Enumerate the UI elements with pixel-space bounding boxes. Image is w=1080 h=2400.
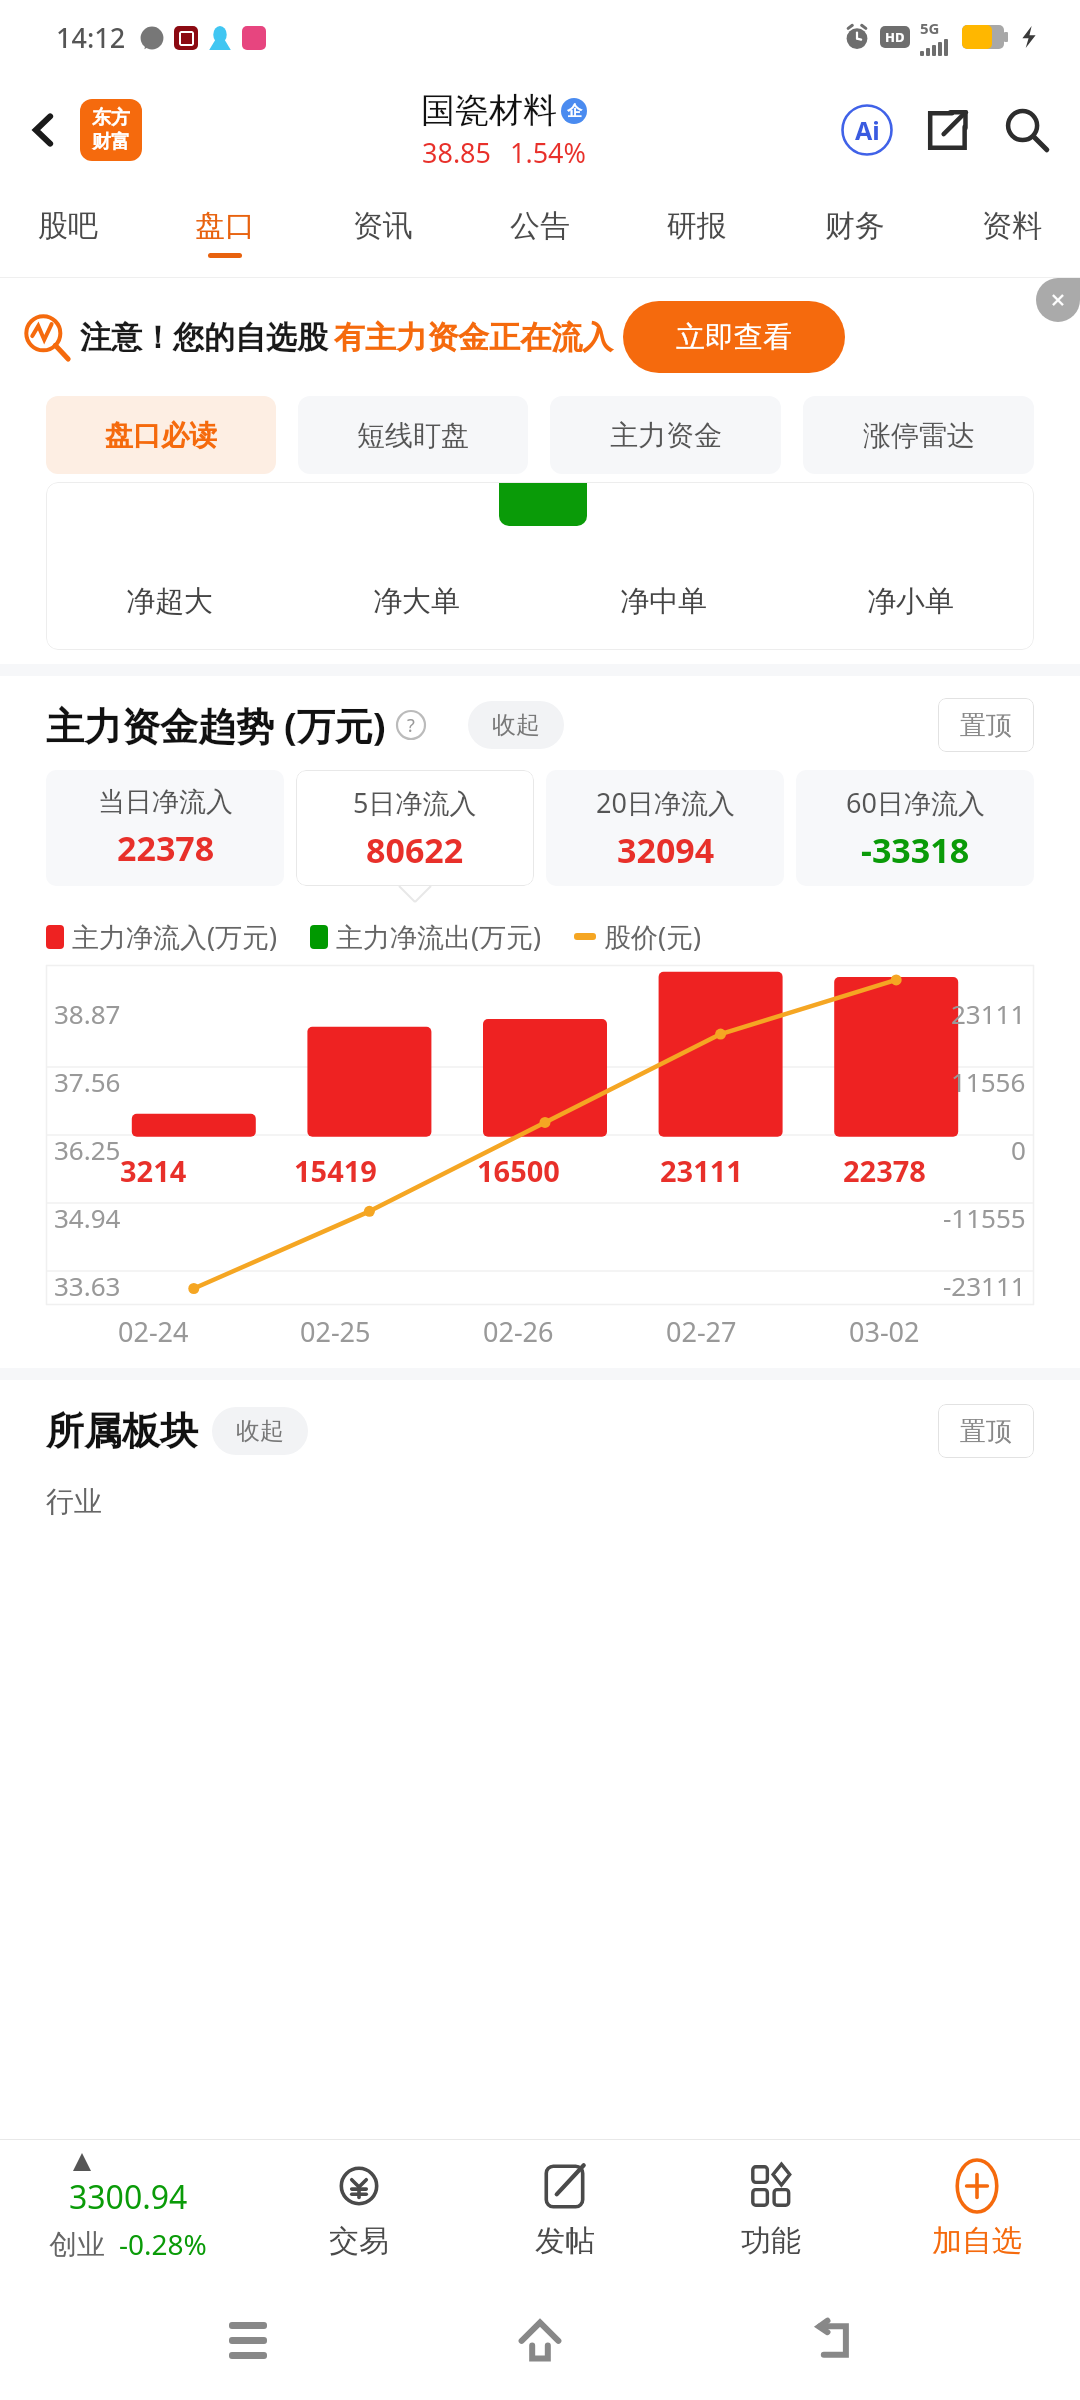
- staticText: 有主力资金正在流入: [334, 318, 613, 357]
- staticText: 33.63: [54, 1268, 121, 1303]
- button[interactable]: 财务: [825, 186, 885, 278]
- button[interactable]: Home: [495, 2295, 585, 2385]
- staticText: 置顶: [960, 1415, 1012, 1448]
- staticText: 34.94: [54, 1200, 121, 1235]
- staticText: 企: [567, 102, 582, 121]
- button[interactable]: 研报: [667, 186, 727, 278]
- staticText: 3300.94: [69, 2175, 188, 2219]
- button[interactable]: 5日净流入: [296, 770, 534, 886]
- button[interactable]: 净中单: [540, 583, 787, 620]
- button[interactable]: Recents: [203, 2295, 293, 2385]
- button[interactable]: 公告: [510, 186, 570, 278]
- button[interactable]: 盘口: [195, 186, 255, 278]
- staticText: 11556: [951, 1064, 1026, 1099]
- button[interactable]: 加自选: [874, 2160, 1080, 2260]
- button[interactable]: Back: [14, 100, 74, 160]
- staticText: 1.54%: [510, 134, 587, 171]
- button[interactable]: 发帖: [462, 2160, 668, 2260]
- button[interactable]: Back: [788, 2295, 878, 2385]
- button[interactable]: 60日净流入: [796, 770, 1034, 886]
- staticText: 研报: [667, 207, 727, 245]
- staticText: 22378: [843, 1151, 926, 1190]
- staticText: 资料: [982, 207, 1042, 245]
- staticText: 发帖: [535, 2222, 595, 2260]
- staticText: 20日净流入: [596, 784, 735, 821]
- staticText: 38.87: [54, 996, 121, 1031]
- button[interactable]: 3300.94: [0, 2157, 256, 2263]
- button[interactable]: AI assistant: [838, 101, 896, 159]
- staticText: 38.85: [422, 134, 492, 171]
- staticText: 02-26: [483, 1313, 554, 1350]
- staticText: 财务: [825, 207, 885, 245]
- button[interactable]: 功能: [668, 2160, 874, 2260]
- button[interactable]: 东方财富: [80, 99, 142, 161]
- button[interactable]: 20日净流入: [546, 770, 784, 886]
- button[interactable]: Share: [918, 101, 976, 159]
- staticText: Ai: [855, 113, 880, 147]
- button[interactable]: 净超大: [46, 583, 293, 620]
- staticText: 37.56: [54, 1064, 121, 1099]
- button[interactable]: 盘口必读: [46, 396, 276, 474]
- staticText: 主力净流入(万元): [72, 918, 278, 955]
- staticText: 交易: [329, 2222, 389, 2260]
- button[interactable]: 涨停雷达: [803, 396, 1034, 474]
- staticText: 15419: [294, 1151, 377, 1190]
- staticText: 14:12: [56, 19, 126, 56]
- button[interactable]: 净小单: [787, 583, 1034, 620]
- button[interactable]: 注意！您的自选股: [24, 278, 1064, 396]
- staticText: 行业: [46, 1484, 102, 1519]
- staticText: ?: [407, 713, 415, 738]
- staticText: 80622: [366, 827, 464, 873]
- staticText: 置顶: [960, 709, 1012, 742]
- staticText: 财富: [92, 130, 130, 154]
- button[interactable]: 资料: [982, 186, 1042, 278]
- staticText: 股吧: [38, 207, 98, 245]
- staticText: 盘口: [195, 207, 255, 245]
- staticText: 所属板块: [46, 1407, 198, 1455]
- staticText: 短线盯盘: [357, 418, 469, 453]
- staticText: 立即查看: [676, 319, 792, 356]
- button[interactable]: 股吧: [38, 186, 98, 278]
- button[interactable]: 置顶: [938, 1404, 1034, 1458]
- staticText: -33318: [861, 827, 970, 873]
- button[interactable]: 收起: [212, 1407, 308, 1455]
- staticText: 收起: [236, 1416, 284, 1446]
- button[interactable]: 当日净流入: [46, 770, 284, 886]
- button[interactable]: Search: [998, 101, 1056, 159]
- button[interactable]: 资讯: [353, 186, 413, 278]
- staticText: 资讯: [353, 207, 413, 245]
- staticText: 02-27: [666, 1313, 737, 1350]
- staticText: -23111: [943, 1268, 1026, 1303]
- staticText: 23111: [951, 996, 1026, 1031]
- staticText: -11555: [943, 1200, 1026, 1235]
- staticText: ✕: [1050, 289, 1066, 311]
- staticText: 净超大: [126, 583, 213, 620]
- staticText: 东方: [92, 106, 130, 130]
- button[interactable]: 净大单: [293, 583, 540, 620]
- button[interactable]: 立即查看: [623, 301, 845, 373]
- button[interactable]: 主力资金: [550, 396, 781, 474]
- staticText: 公告: [510, 207, 570, 245]
- button[interactable]: 置顶: [938, 698, 1034, 752]
- staticText: 当日净流入: [98, 785, 233, 819]
- button[interactable]: 交易: [256, 2160, 462, 2260]
- staticText: 主力资金: [610, 418, 722, 453]
- button[interactable]: 短线盯盘: [298, 396, 528, 474]
- staticText: 功能: [741, 2222, 801, 2260]
- staticText: 注意！您的自选股: [80, 318, 328, 357]
- staticText: 22378: [117, 825, 215, 871]
- staticText: 32094: [617, 827, 715, 873]
- staticText: 主力净流出(万元): [336, 918, 542, 955]
- staticText: 收起: [492, 710, 540, 740]
- staticText: 3214: [120, 1151, 187, 1190]
- button[interactable]: 收起: [468, 701, 564, 749]
- staticText: 股价(元): [604, 918, 702, 955]
- staticText: 涨停雷达: [863, 418, 975, 453]
- button[interactable]: Close: [1036, 278, 1080, 322]
- staticText: 03-02: [849, 1313, 920, 1350]
- staticText: 0: [1011, 1132, 1026, 1167]
- staticText: 5G: [920, 18, 940, 38]
- staticText: 60日净流入: [846, 784, 985, 821]
- staticText: 36.25: [54, 1132, 121, 1167]
- staticText: 净中单: [620, 583, 707, 620]
